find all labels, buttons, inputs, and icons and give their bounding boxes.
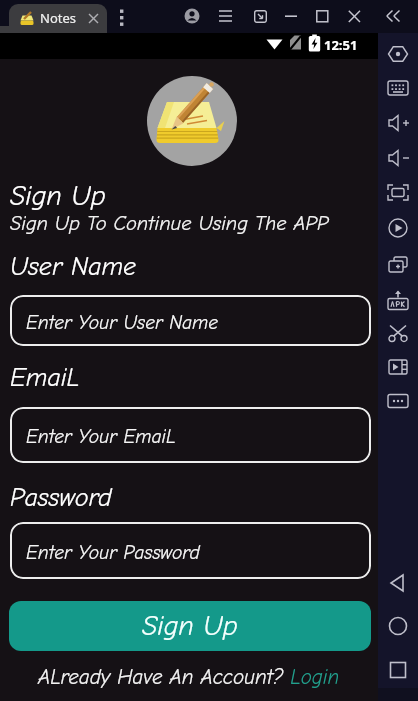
button[interactable] [384, 612, 412, 640]
button[interactable] [219, 10, 233, 22]
button[interactable] [116, 8, 128, 28]
staticText: Sign Up [142, 610, 238, 642]
button[interactable] [384, 569, 412, 597]
staticText: Sign Up [10, 180, 106, 212]
staticText: Notes [40, 9, 76, 27]
staticText: Enter Your EmaiL [26, 425, 176, 447]
button[interactable] [254, 10, 267, 23]
button[interactable] [184, 8, 200, 24]
staticText: Sign Up To Continue Using The APP [10, 212, 329, 236]
button[interactable] [316, 10, 329, 23]
button[interactable]: Sign Up [9, 601, 371, 651]
button[interactable]: Enter Your User Name [10, 295, 371, 346]
button[interactable] [384, 656, 412, 684]
staticText: EmaiL [10, 363, 80, 393]
staticText: 12:51 [324, 36, 358, 54]
button[interactable]: Enter Your Password [10, 522, 371, 579]
staticText: Enter Your User Name [26, 311, 219, 333]
button[interactable]: ALready Have An Account? Login [38, 665, 340, 689]
staticText: Password [10, 483, 112, 513]
button[interactable] [285, 15, 298, 18]
staticText: User Name [10, 252, 137, 282]
button[interactable] [348, 10, 361, 23]
button[interactable] [386, 10, 401, 23]
staticText: Enter Your Password [26, 541, 200, 563]
button[interactable]: Notes [9, 4, 107, 33]
button[interactable]: Enter Your EmaiL [10, 407, 371, 463]
